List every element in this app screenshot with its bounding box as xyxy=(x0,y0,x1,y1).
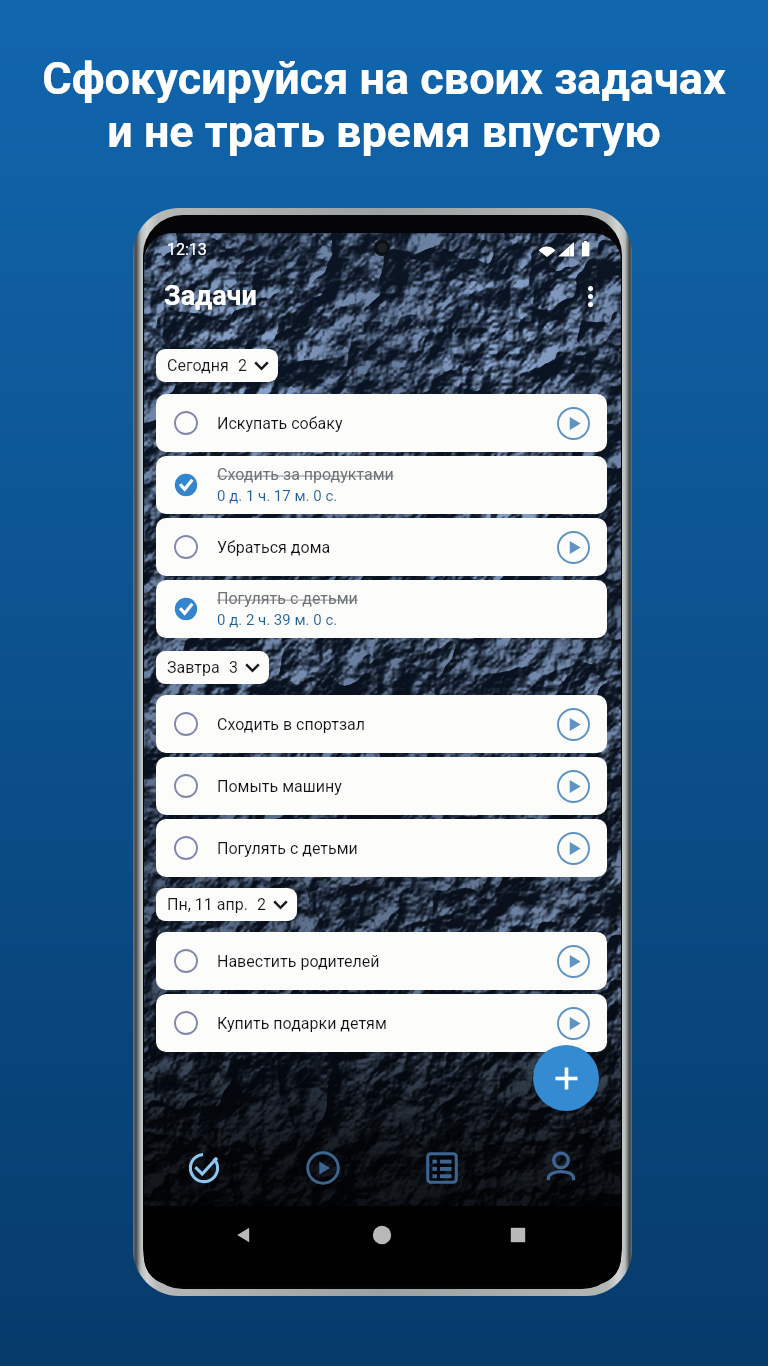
staticText: 0 д. 2 ч. 39 м. 0 с. xyxy=(217,611,338,629)
button[interactable]: Запустить xyxy=(549,999,597,1047)
button[interactable]: Сходить за продуктами xyxy=(156,456,607,514)
button[interactable]: Убраться дома xyxy=(156,518,607,576)
button[interactable]: Запустить xyxy=(549,399,597,447)
staticText: 2 xyxy=(257,895,266,914)
staticText: Навестить родителей xyxy=(217,952,380,971)
button[interactable]: Помыть машину xyxy=(156,757,607,815)
staticText: Сходить в спортзал xyxy=(217,715,365,734)
staticText: Помыть машину xyxy=(217,777,342,796)
staticText: Пн, 11 апр. xyxy=(167,895,248,914)
button[interactable]: Таймер xyxy=(297,1142,349,1194)
staticText: Сфокусируйся на своих задачах xyxy=(42,52,726,105)
button[interactable]: Добавить задачу xyxy=(533,1045,599,1111)
button[interactable]: Навестить родителей xyxy=(156,932,607,990)
button[interactable]: Профиль xyxy=(535,1142,587,1194)
button[interactable]: Сходить в спортзал xyxy=(156,695,607,753)
button[interactable]: Пн, 11 апр. xyxy=(156,888,297,921)
button[interactable]: Запустить xyxy=(549,937,597,985)
button[interactable]: Искупать собаку xyxy=(156,394,607,452)
staticText: Искупать собаку xyxy=(217,414,343,433)
staticText: Убраться дома xyxy=(217,538,331,557)
button[interactable]: Запустить xyxy=(549,700,597,748)
staticText: 12:13 xyxy=(167,240,207,259)
staticText: 3 xyxy=(229,658,238,677)
button[interactable]: Купить подарки детям xyxy=(156,994,607,1052)
button[interactable]: Запустить xyxy=(549,824,597,872)
staticText: Сходить за продуктами xyxy=(217,465,394,484)
button[interactable]: Сегодня xyxy=(156,349,278,382)
staticText: Сегодня xyxy=(167,356,229,375)
staticText: Задачи xyxy=(164,280,257,312)
button[interactable]: Завтра xyxy=(156,651,269,684)
staticText: Погулять с детьми xyxy=(217,839,358,858)
button[interactable]: Меню xyxy=(568,274,612,318)
staticText: 0 д. 1 ч. 17 м. 0 с. xyxy=(217,487,338,505)
staticText: и не трать время впустую xyxy=(107,105,661,158)
button[interactable]: Погулять с детьми xyxy=(156,580,607,638)
staticText: Завтра xyxy=(167,658,220,677)
button[interactable]: Список xyxy=(416,1142,468,1194)
button[interactable]: Запустить xyxy=(549,523,597,571)
staticText: 2 xyxy=(238,356,247,375)
staticText: Погулять с детьми xyxy=(217,589,358,608)
staticText: Купить подарки детям xyxy=(217,1014,387,1033)
button[interactable]: Погулять с детьми xyxy=(156,819,607,877)
button[interactable]: Запустить xyxy=(549,762,597,810)
button[interactable]: Задачи xyxy=(178,1142,230,1194)
